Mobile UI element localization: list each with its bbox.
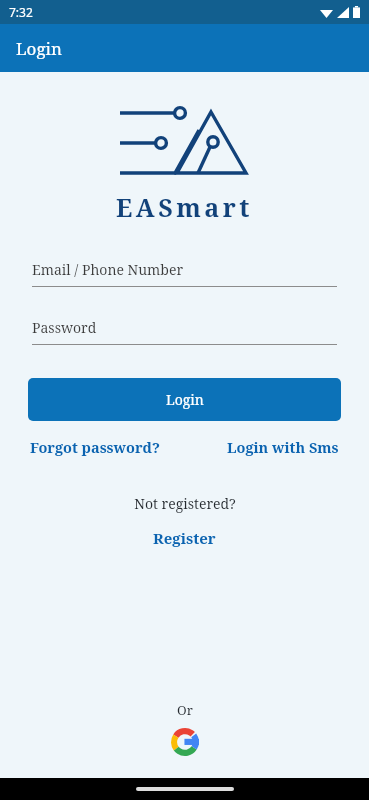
staticText: Login with Sms: [227, 437, 339, 457]
button[interactable]: Login with Sms: [227, 431, 339, 463]
button[interactable]: Password: [32, 318, 337, 345]
staticText: Login: [16, 37, 62, 60]
button[interactable]: Forgot password?: [30, 431, 160, 463]
staticText: Email / Phone Number: [32, 260, 184, 279]
staticText: Or: [177, 701, 193, 719]
staticText: 7:32: [9, 4, 33, 20]
staticText: Login: [166, 390, 204, 409]
button[interactable]: Login: [28, 378, 341, 421]
button[interactable]: Email / Phone Number: [32, 260, 337, 287]
staticText: Register: [153, 528, 216, 548]
button[interactable]: Register: [147, 526, 222, 550]
staticText: Forgot password?: [30, 437, 160, 457]
staticText: Not registered?: [134, 494, 236, 513]
staticText: EASmart: [116, 190, 253, 224]
staticText: Password: [32, 318, 97, 337]
button[interactable]: Sign in with Google: [170, 727, 200, 757]
